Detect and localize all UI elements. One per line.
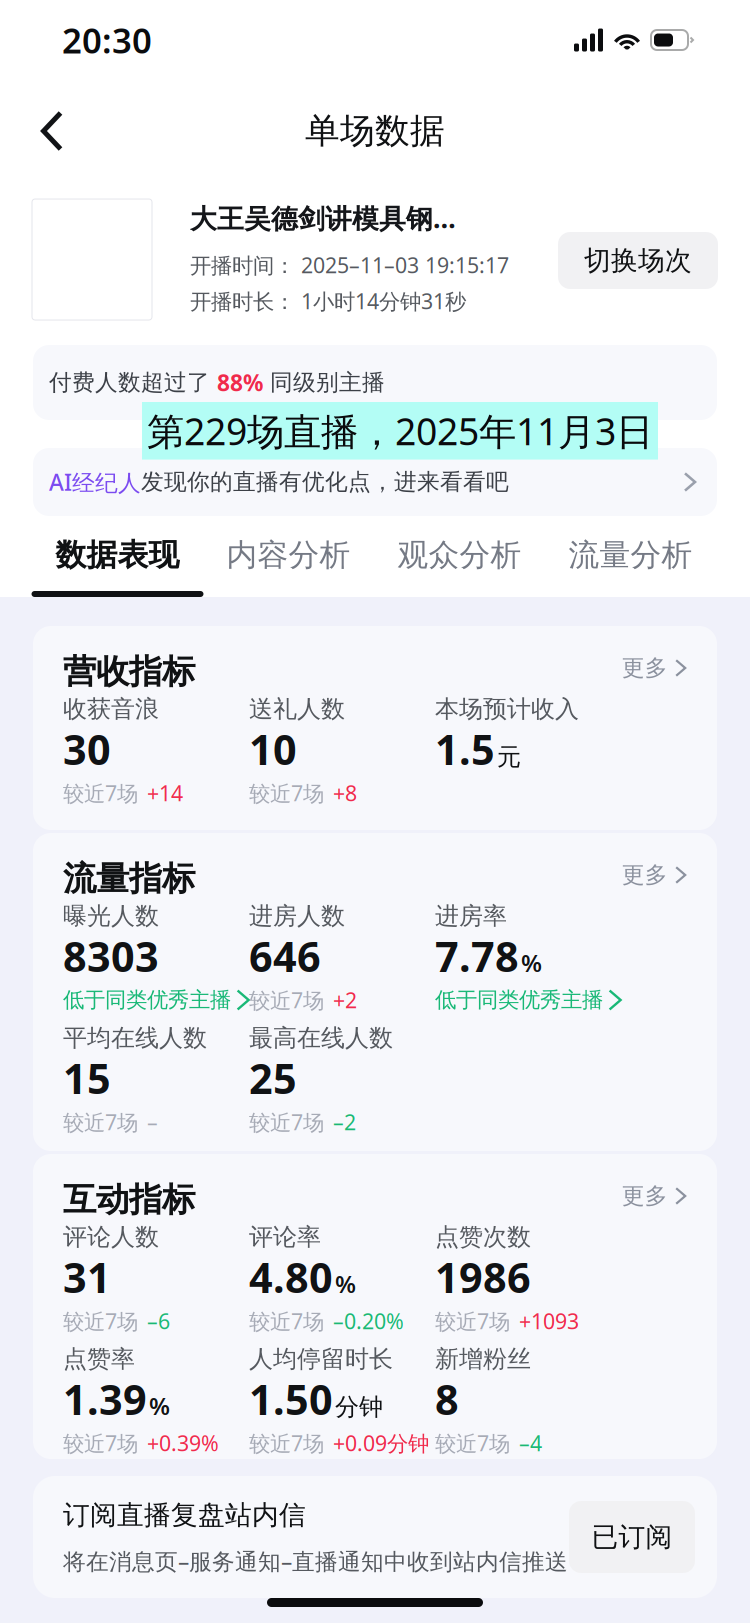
- staticText: 较近7场: [249, 779, 324, 807]
- staticText: 1.39: [63, 1372, 147, 1426]
- staticText: 互动指标: [63, 1179, 195, 1220]
- staticText: 大王吴德剑讲模具钢…: [190, 200, 456, 236]
- staticText: +1093: [519, 1307, 579, 1335]
- staticText: 内容分析: [226, 536, 350, 574]
- staticText: +8: [333, 779, 357, 807]
- staticText: +14: [147, 779, 183, 807]
- staticText: 较近7场: [435, 1307, 510, 1335]
- staticText: –2: [333, 1108, 356, 1136]
- staticText: 较近7场: [435, 1429, 510, 1457]
- staticText: 较近7场: [63, 1307, 138, 1335]
- button[interactable]: 更多: [622, 646, 687, 690]
- button[interactable]: AI经纪人: [33, 448, 717, 516]
- staticText: 更多: [622, 861, 668, 889]
- staticText: +0.39%: [147, 1429, 219, 1457]
- staticText: 将在消息页–服务通知–直播通知中收到站内信推送: [63, 1546, 568, 1576]
- staticText: 1.5: [435, 722, 495, 776]
- staticText: 8303: [63, 929, 159, 983]
- staticText: 88%: [217, 367, 263, 397]
- staticText: %: [521, 947, 542, 979]
- staticText: 较近7场: [63, 1108, 138, 1136]
- button[interactable]: 观众分析: [374, 523, 545, 597]
- staticText: 开播时长： 1小时14分钟31秒: [190, 287, 466, 315]
- staticText: 低于同类优秀主播: [63, 987, 231, 1013]
- staticText: 较近7场: [63, 779, 138, 807]
- staticText: 送礼人数: [249, 694, 345, 724]
- staticText: 4.80: [249, 1250, 333, 1304]
- staticText: 30: [63, 722, 111, 776]
- staticText: 最高在线人数: [249, 1023, 393, 1053]
- staticText: 付费人数超过了: [49, 369, 217, 396]
- staticText: 营收指标: [63, 651, 195, 692]
- staticText: 较近7场: [249, 1429, 324, 1457]
- staticText: 开播时间： 2025–11–03 19:15:17: [190, 251, 509, 279]
- staticText: 发现你的直播有优化点，进来看看吧: [141, 468, 509, 496]
- button[interactable]: 内容分析: [203, 523, 374, 597]
- staticText: –0.20%: [333, 1307, 404, 1335]
- staticText: 人均停留时长: [249, 1344, 393, 1374]
- staticText: 646: [249, 929, 321, 983]
- staticText: 新增粉丝: [435, 1344, 531, 1374]
- staticText: 点赞率: [63, 1344, 135, 1374]
- staticText: 评论人数: [63, 1222, 159, 1252]
- staticText: 切换场次: [584, 244, 692, 277]
- staticText: 较近7场: [249, 1108, 324, 1136]
- staticText: 收获音浪: [63, 694, 159, 724]
- staticText: 本场预计收入: [435, 694, 579, 724]
- button[interactable]: 流量分析: [545, 523, 716, 597]
- staticText: 流量分析: [568, 536, 692, 574]
- staticText: 较近7场: [63, 1429, 138, 1457]
- staticText: 点赞次数: [435, 1222, 531, 1252]
- staticText: +2: [333, 986, 357, 1014]
- staticText: –4: [519, 1429, 542, 1457]
- button[interactable]: 已订阅: [569, 1501, 695, 1573]
- staticText: 流量指标: [63, 858, 195, 899]
- button[interactable]: 更多: [622, 1174, 687, 1218]
- staticText: 数据表现: [55, 536, 179, 574]
- staticText: 7.78: [435, 929, 519, 983]
- staticText: 分钟: [335, 1392, 383, 1422]
- staticText: 10: [249, 722, 297, 776]
- staticText: 1.50: [249, 1372, 333, 1426]
- staticText: 1986: [435, 1250, 531, 1304]
- staticText: 31: [63, 1250, 111, 1304]
- staticText: 15: [63, 1051, 111, 1105]
- staticText: 低于同类优秀主播: [435, 987, 603, 1013]
- staticText: 元: [497, 742, 521, 772]
- button[interactable]: 切换场次: [558, 232, 718, 289]
- staticText: 平均在线人数: [63, 1023, 207, 1053]
- button[interactable]: 低于同类优秀主播: [435, 979, 623, 1021]
- staticText: 单场数据: [305, 110, 445, 152]
- staticText: –6: [147, 1307, 170, 1335]
- staticText: 更多: [622, 1182, 668, 1210]
- button[interactable]: 低于同类优秀主播: [63, 979, 251, 1021]
- staticText: 进房人数: [249, 901, 345, 931]
- staticText: 25: [249, 1051, 297, 1105]
- staticText: %: [149, 1390, 170, 1422]
- staticText: 第229场直播，2025年11月3日: [147, 406, 653, 456]
- staticText: 评论率: [249, 1222, 321, 1252]
- staticText: +0.09分钟: [333, 1429, 429, 1457]
- staticText: 订阅直播复盘站内信: [63, 1499, 306, 1531]
- button[interactable]: 数据表现: [32, 523, 203, 597]
- staticText: 8: [435, 1372, 459, 1426]
- button[interactable]: 返回: [0, 83, 104, 179]
- staticText: %: [335, 1268, 356, 1300]
- staticText: 曝光人数: [63, 901, 159, 931]
- staticText: 较近7场: [249, 1307, 324, 1335]
- staticText: –: [147, 1108, 158, 1136]
- button[interactable]: 更多: [622, 853, 687, 897]
- staticText: 较近7场: [249, 986, 324, 1014]
- staticText: 更多: [622, 654, 668, 682]
- staticText: 同级别主播: [263, 369, 385, 396]
- staticText: AI经纪人: [49, 467, 141, 497]
- staticText: 20:30: [62, 17, 152, 63]
- staticText: 已订阅: [591, 1521, 672, 1553]
- staticText: 进房率: [435, 901, 507, 931]
- staticText: 观众分析: [397, 536, 521, 574]
